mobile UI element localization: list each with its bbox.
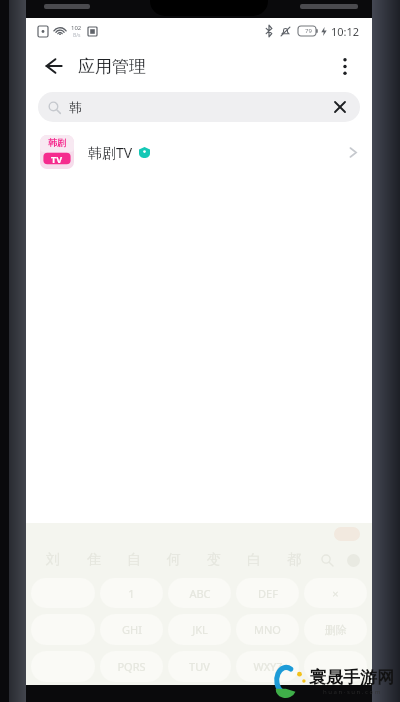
button[interactable]: 删除 <box>304 614 367 645</box>
staticText: 都 <box>287 551 301 569</box>
staticText: 1 <box>128 586 135 601</box>
staticText: 10:12 <box>331 24 360 39</box>
button[interactable]: 变 <box>194 545 234 575</box>
staticText: JKL <box>192 622 208 637</box>
button[interactable] <box>304 651 367 682</box>
staticText: 白 <box>247 551 261 569</box>
staticText: DEF <box>258 586 278 601</box>
button[interactable]: 自 <box>114 545 154 575</box>
button[interactable]: 韩 <box>38 92 360 122</box>
button[interactable] <box>314 547 340 573</box>
staticText: 79 <box>305 27 312 35</box>
staticText: 隹 <box>87 551 101 569</box>
staticText: ABC <box>189 586 211 601</box>
staticText: 删除 <box>325 623 347 637</box>
staticText: 韩 <box>69 99 82 115</box>
staticText: 102 <box>71 24 82 32</box>
staticText: 刘 <box>46 551 60 569</box>
staticText: GHI <box>122 622 142 637</box>
button[interactable]: More options <box>326 47 364 85</box>
staticText: 自 <box>127 551 141 569</box>
button[interactable]: 都 <box>274 545 314 575</box>
button[interactable]: PQRS <box>100 651 163 682</box>
staticText: × <box>332 586 339 601</box>
button[interactable]: JKL <box>168 614 231 645</box>
button[interactable]: 隹 <box>73 545 114 575</box>
button[interactable] <box>334 527 360 541</box>
button[interactable]: ABC <box>168 578 231 608</box>
button[interactable]: TUV <box>168 651 231 682</box>
staticText: WXYZ <box>253 659 283 674</box>
staticText: MNO <box>254 622 281 637</box>
button[interactable]: 刘 <box>32 545 73 575</box>
button[interactable]: 何 <box>154 545 194 575</box>
button[interactable]: DEF <box>236 578 299 608</box>
button[interactable]: Back <box>34 47 72 85</box>
button[interactable]: 白 <box>234 545 274 575</box>
staticText: PQRS <box>117 659 146 674</box>
button[interactable] <box>340 547 366 573</box>
button[interactable]: 韩剧 <box>26 126 372 178</box>
staticText: TUV <box>189 659 210 674</box>
staticText: 寰晟手游网 <box>309 667 394 688</box>
staticText: 变 <box>207 551 221 569</box>
button[interactable]: Clear search <box>330 97 350 117</box>
button[interactable]: GHI <box>100 614 163 645</box>
staticText: 何 <box>167 551 181 569</box>
button[interactable]: MNO <box>236 614 299 645</box>
staticText: TV <box>51 153 63 165</box>
staticText: 韩剧 <box>48 137 66 148</box>
staticText: 应用管理 <box>78 56 146 77</box>
staticText: B/s <box>73 32 81 39</box>
staticText: h u a n · s u n . c o m <box>323 688 381 696</box>
button[interactable]: WXYZ <box>236 651 299 682</box>
staticText: 韩剧TV <box>88 143 133 162</box>
